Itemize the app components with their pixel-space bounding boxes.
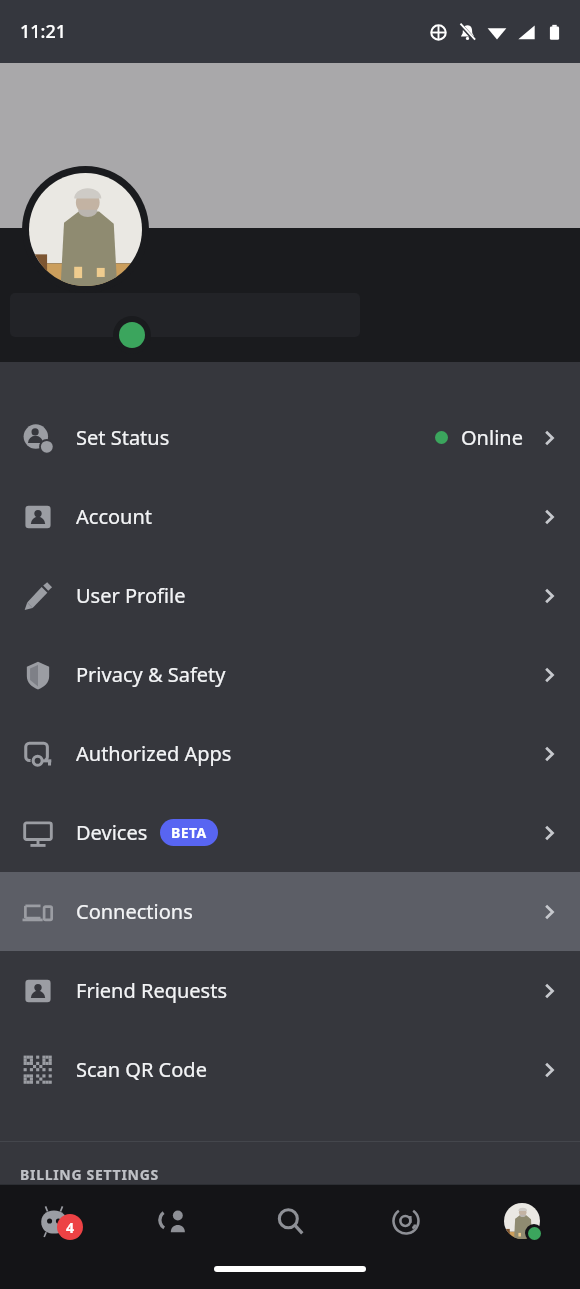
staticText: Devices: [76, 819, 148, 846]
button[interactable]: Account: [0, 477, 580, 556]
button[interactable]: Set Status: [0, 398, 580, 477]
button[interactable]: Scan QR Code: [0, 1030, 580, 1109]
button[interactable]: Authorized Apps: [0, 714, 580, 793]
staticText: 4: [66, 1218, 75, 1237]
staticText: User Profile: [76, 582, 186, 609]
staticText: Privacy & Safety: [76, 661, 226, 688]
button[interactable]: Servers: [0, 1185, 116, 1257]
staticText: Scan QR Code: [76, 1056, 207, 1083]
button[interactable]: Connections: [0, 872, 580, 951]
button[interactable]: Devices: [0, 793, 580, 872]
staticText: Set Status: [76, 424, 170, 451]
button[interactable]: Mentions: [348, 1185, 464, 1257]
button[interactable]: Search: [232, 1185, 348, 1257]
staticText: Friend Requests: [76, 977, 227, 1004]
staticText: Authorized Apps: [76, 740, 232, 767]
staticText: Account: [76, 503, 153, 530]
button[interactable]: You: [464, 1185, 580, 1257]
button[interactable]: Privacy & Safety: [0, 635, 580, 714]
staticText: BETA: [171, 823, 207, 842]
button[interactable]: Friend Requests: [0, 951, 580, 1030]
staticText: BILLING SETTINGS: [20, 1165, 159, 1184]
staticText: 11:21: [20, 19, 67, 44]
staticText: Online: [461, 424, 523, 451]
staticText: Connections: [76, 898, 193, 925]
button[interactable]: Friends: [116, 1185, 232, 1257]
button[interactable]: User Profile: [0, 556, 580, 635]
